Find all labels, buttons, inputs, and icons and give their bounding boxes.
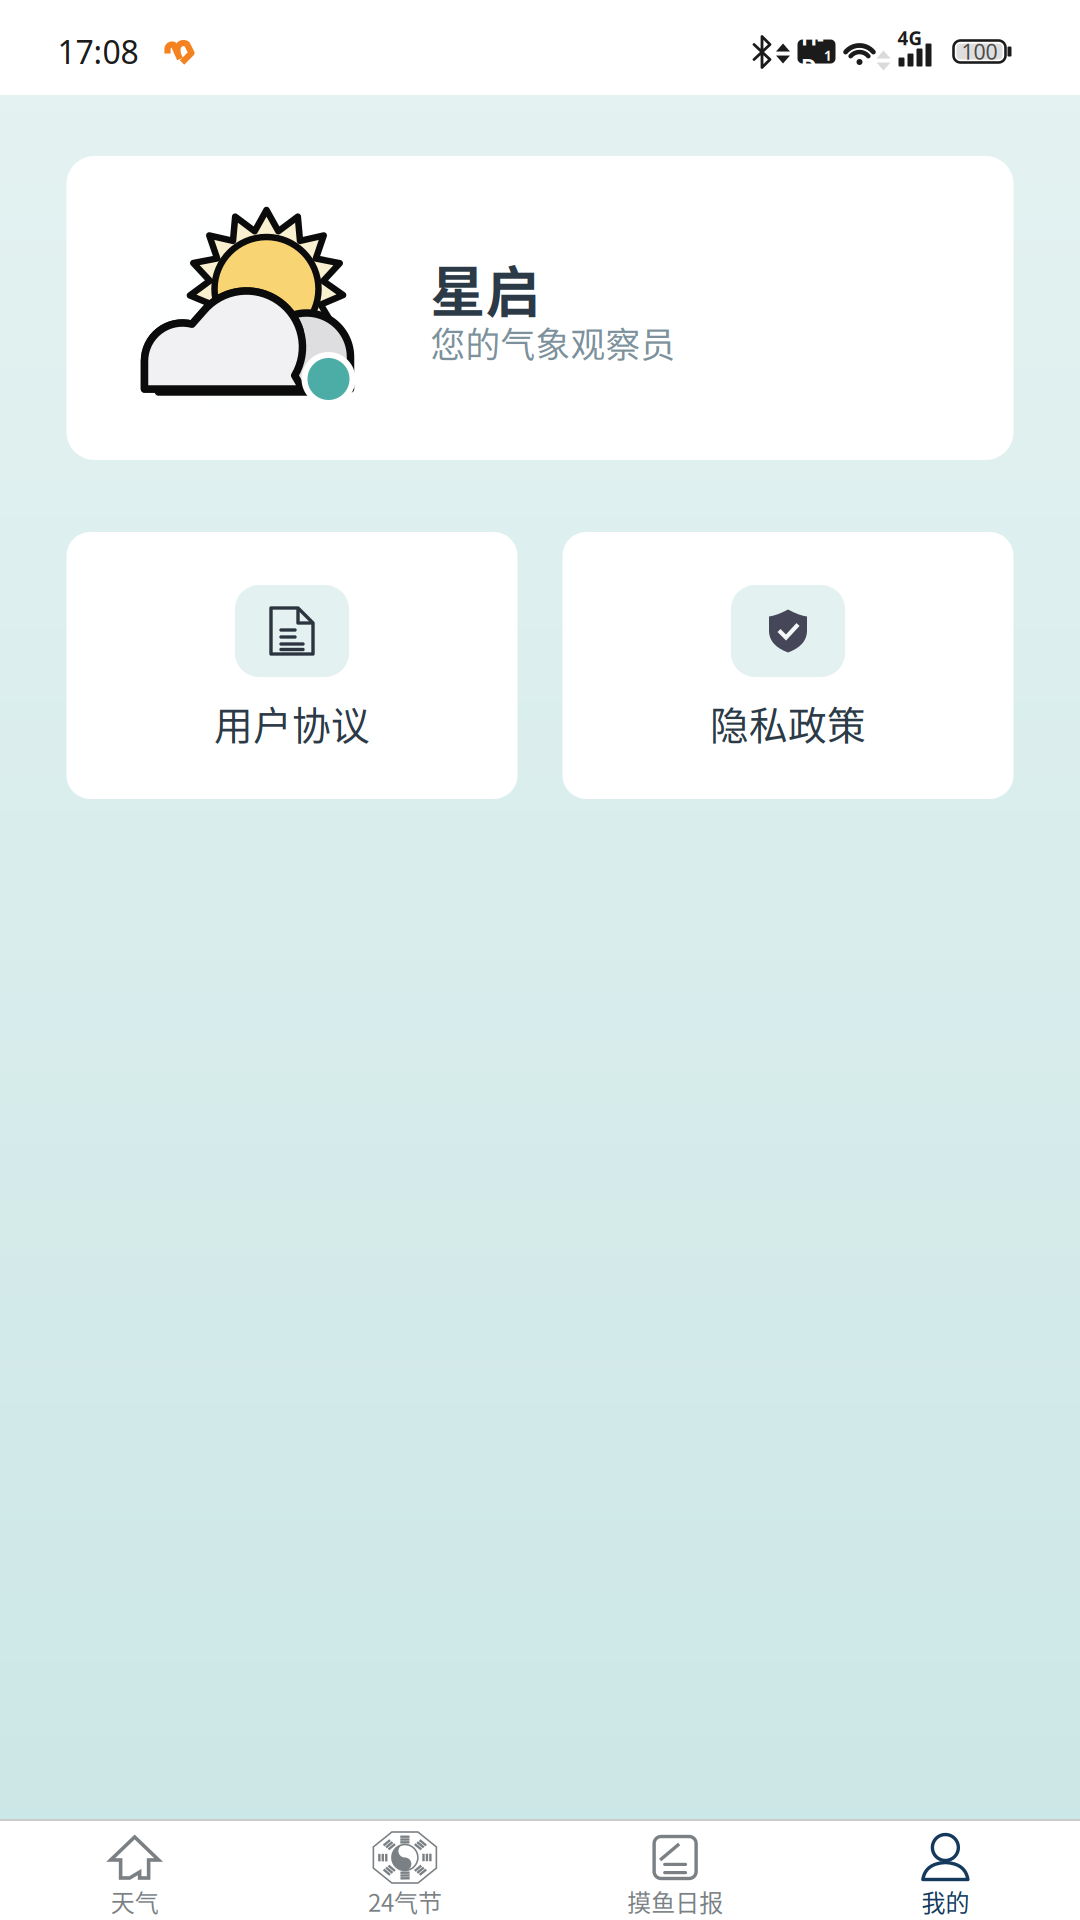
staticText: 100 (961, 37, 997, 66)
button[interactable]: 24气节 (270, 1821, 540, 1920)
staticText: 我的 (921, 1884, 969, 1919)
staticText: 1 (824, 47, 832, 64)
staticText: 摸鱼日报 (627, 1884, 723, 1919)
staticText: 隐私政策 (710, 695, 866, 751)
staticText: 您的气象观察员 (430, 317, 675, 368)
button[interactable]: 我的 (810, 1821, 1080, 1920)
button[interactable]: 天气 (0, 1821, 270, 1920)
button[interactable]: 星启 (66, 156, 1013, 460)
staticText: 24气节 (368, 1884, 442, 1919)
button[interactable]: 摸鱼日报 (540, 1821, 810, 1920)
staticText: HD (801, 23, 824, 80)
staticText: 用户协议 (214, 695, 370, 751)
staticText: 4G (897, 26, 922, 50)
button[interactable]: 用户协议 (66, 532, 517, 799)
staticText: 星启 (430, 248, 540, 327)
staticText: 17:08 (57, 30, 138, 73)
staticText: 天气 (111, 1884, 159, 1919)
button[interactable]: 隐私政策 (562, 532, 1013, 799)
